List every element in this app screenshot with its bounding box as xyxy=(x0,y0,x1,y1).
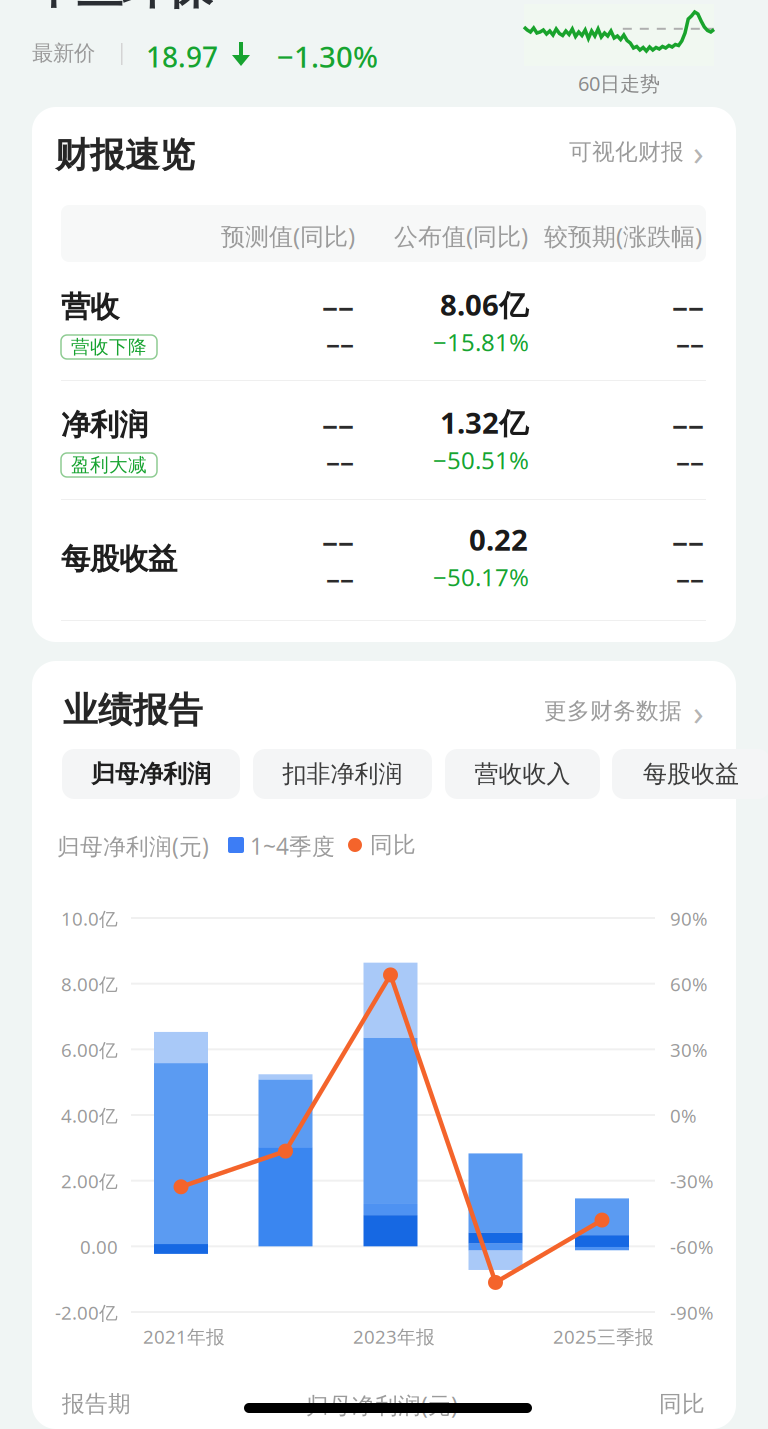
staticText: –– xyxy=(326,325,354,362)
staticText: –– xyxy=(326,560,354,597)
staticText: 营收收入 xyxy=(474,759,570,789)
staticText: –– xyxy=(672,402,704,444)
staticText: 扣非净利润 xyxy=(282,759,402,789)
staticText: 每股收益 xyxy=(643,759,739,789)
staticText: 盈利大减 xyxy=(71,453,147,476)
button[interactable]: 每股收益 xyxy=(612,749,768,799)
staticText: -2.00亿 xyxy=(55,1300,118,1325)
staticText: 6.00亿 xyxy=(61,1037,118,1062)
button[interactable]: 归母净利润 xyxy=(62,749,240,799)
button[interactable]: 营收收入 xyxy=(445,749,600,799)
button[interactable]: 业绩报告 xyxy=(32,661,736,747)
staticText: 归母净利润(元) xyxy=(57,831,209,861)
staticText: 2021年报 xyxy=(143,1324,225,1349)
staticText: -60% xyxy=(670,1234,714,1259)
staticText: −1.30% xyxy=(277,37,378,76)
staticText: –– xyxy=(672,519,704,561)
button[interactable]: 财报速览 xyxy=(32,107,736,193)
staticText: 1.32亿 xyxy=(440,403,528,442)
staticText: 归母净利润(元) xyxy=(306,1390,458,1420)
staticText: 4.00亿 xyxy=(61,1103,118,1128)
staticText: –– xyxy=(322,402,354,444)
staticText: 更多财务数据 xyxy=(544,697,682,725)
staticText: 2.00亿 xyxy=(61,1169,118,1193)
staticText: 财报速览 xyxy=(55,134,195,177)
staticText: –– xyxy=(676,560,704,597)
staticText: 营收 xyxy=(61,289,119,325)
staticText: 10.0亿 xyxy=(61,906,118,931)
staticText: −15.81% xyxy=(433,326,529,358)
staticText: 60日走势 xyxy=(578,70,660,97)
staticText: −50.17% xyxy=(433,561,529,593)
staticText: 营收下降 xyxy=(71,335,147,358)
staticText: › xyxy=(693,689,704,735)
staticText: 预测值(同比) xyxy=(221,220,355,252)
staticText: 同比 xyxy=(370,831,416,859)
staticText: 8.00亿 xyxy=(61,972,118,996)
staticText: -90% xyxy=(670,1300,714,1325)
staticText: 净利润 xyxy=(61,407,148,443)
staticText: 0.22 xyxy=(469,520,528,559)
staticText: 最新价 xyxy=(32,40,95,66)
staticText: -30% xyxy=(670,1169,714,1193)
staticText: 同比 xyxy=(659,1390,705,1418)
button[interactable]: 扣非净利润 xyxy=(253,749,432,799)
staticText: 2025三季报 xyxy=(553,1324,654,1349)
staticText: –– xyxy=(326,443,354,480)
staticText: –– xyxy=(322,519,354,561)
staticText: –– xyxy=(676,443,704,480)
staticText: –– xyxy=(672,284,704,326)
staticText: –– xyxy=(322,284,354,326)
staticText: 归母净利润 xyxy=(91,759,211,789)
staticText: 0.00 xyxy=(80,1234,118,1259)
staticText: −50.51% xyxy=(433,444,529,476)
staticText: 可视化财报 xyxy=(569,138,684,166)
staticText: 0% xyxy=(670,1103,697,1128)
staticText: 中兰环保 xyxy=(32,0,212,16)
staticText: 公布值(同比) xyxy=(394,220,528,252)
staticText: 报告期 xyxy=(62,1390,131,1418)
staticText: 8.06亿 xyxy=(440,285,528,324)
staticText: –– xyxy=(676,325,704,362)
staticText: 2023年报 xyxy=(353,1324,435,1349)
staticText: › xyxy=(693,129,704,175)
staticText: 60% xyxy=(670,972,708,996)
staticText: 30% xyxy=(670,1037,708,1062)
staticText: 较预期(涨跌幅) xyxy=(544,220,702,252)
staticText: 18.97 xyxy=(146,38,218,75)
staticText: 每股收益 xyxy=(61,541,177,577)
staticText: 1~4季度 xyxy=(250,831,335,861)
staticText: 业绩报告 xyxy=(63,689,203,732)
staticText: 90% xyxy=(670,906,708,931)
